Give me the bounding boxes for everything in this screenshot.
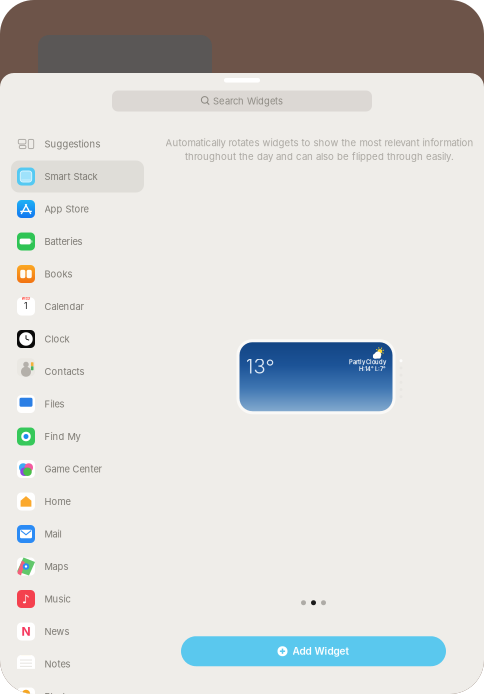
button[interactable]: Search Widgets — [112, 90, 372, 111]
staticText: Files — [44, 398, 64, 410]
staticText: throughout the day and can also be flipp… — [185, 151, 454, 162]
button[interactable]: Find My — [11, 420, 144, 452]
staticText: Partly Cloudy — [349, 359, 386, 366]
staticText: Batteries — [44, 236, 82, 247]
staticText: H:14° L:7° — [359, 366, 386, 373]
staticText: Smart Stack — [44, 171, 97, 182]
button[interactable]: Photos — [11, 680, 144, 694]
button[interactable]: App Store — [11, 193, 144, 225]
button[interactable]: Files — [11, 388, 144, 420]
staticText: News — [44, 626, 69, 637]
staticText: Clock — [44, 333, 69, 345]
staticText: Contacts — [44, 366, 84, 377]
button[interactable]: Add Widget — [181, 636, 458, 666]
button[interactable]: Maps — [11, 550, 144, 582]
button[interactable]: Game Center — [11, 453, 144, 485]
button[interactable]: Notes — [11, 648, 144, 680]
staticText: 13° — [245, 354, 274, 378]
staticText: Music — [44, 593, 70, 605]
staticText: 1 — [24, 301, 28, 311]
staticText: Find My — [44, 431, 80, 442]
button[interactable]: Suggestions — [11, 128, 144, 160]
staticText: Photos — [44, 691, 76, 694]
button[interactable]: N — [11, 615, 144, 647]
button[interactable]: Smart Stack — [11, 160, 144, 192]
staticText: Mail — [44, 528, 61, 540]
button[interactable]: Mail — [11, 518, 144, 550]
staticText: App Store — [44, 203, 88, 215]
staticText: Game Center — [44, 463, 102, 475]
staticText: Calendar — [44, 301, 84, 312]
staticText: Maps — [44, 561, 68, 572]
button[interactable]: Clock — [11, 323, 144, 355]
staticText: Add Widget — [292, 645, 349, 657]
staticText: ♪ — [22, 592, 30, 606]
staticText: Suggestions — [44, 138, 100, 150]
button[interactable]: WED — [11, 290, 144, 322]
button[interactable]: Home — [11, 485, 144, 517]
button[interactable]: Books — [11, 258, 144, 290]
staticText: Home — [44, 496, 70, 507]
button[interactable]: Batteries — [11, 225, 144, 257]
staticText: Automatically rotates widgets to show th… — [165, 137, 473, 149]
button[interactable]: ♪ — [11, 583, 144, 615]
button[interactable]: Contacts — [11, 355, 144, 387]
staticText: Books — [44, 268, 72, 280]
staticText: Search Widgets — [213, 95, 283, 107]
staticText: Notes — [44, 658, 70, 670]
staticText: WED — [21, 296, 30, 301]
staticText: N — [21, 624, 30, 639]
